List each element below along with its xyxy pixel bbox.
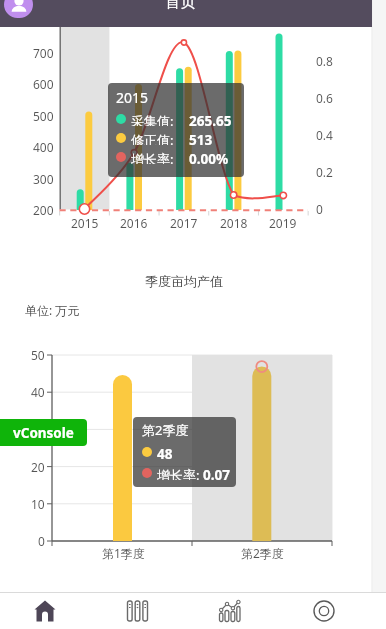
staticText: 0.4 — [316, 127, 333, 143]
staticText: 50 — [31, 347, 45, 363]
staticText: 第2季度 — [142, 421, 189, 439]
button[interactable] — [4, 0, 33, 18]
staticText: 200 — [33, 202, 54, 218]
staticText: 首页 — [165, 0, 196, 12]
staticText: 增长率: — [131, 150, 174, 164]
staticText: 0.6 — [316, 90, 333, 106]
staticText: 2016 — [120, 215, 148, 231]
button[interactable] — [0, 592, 90, 629]
staticText: 0 — [38, 533, 45, 549]
button[interactable] — [183, 592, 276, 629]
staticText: 30 — [31, 421, 45, 437]
staticText: 0.00% — [189, 150, 229, 164]
staticText: 2018 — [220, 215, 248, 231]
staticText: 0.8 — [316, 53, 333, 69]
staticText: 500 — [33, 108, 54, 124]
staticText: 265.65 — [189, 112, 232, 126]
staticText: 增长率: — [157, 466, 203, 480]
staticText: 第1季度 — [102, 545, 145, 561]
staticText: 第2季度 — [241, 545, 284, 561]
staticText: 2015 — [71, 215, 99, 231]
staticText: 48 — [157, 445, 173, 459]
button[interactable]: vConsole — [0, 419, 87, 446]
staticText: 700 — [33, 45, 54, 61]
staticText: 400 — [33, 139, 54, 155]
staticText: 10 — [31, 496, 45, 512]
staticText: 0.07 — [203, 466, 230, 480]
button[interactable] — [276, 592, 372, 629]
staticText: 513 — [189, 131, 213, 145]
staticText: 0 — [316, 201, 323, 217]
staticText: 采集值: — [131, 112, 174, 126]
staticText: 修正值: — [131, 131, 174, 145]
staticText: 40 — [31, 384, 45, 400]
staticText: 2019 — [269, 215, 297, 231]
staticText: 2015 — [116, 88, 149, 106]
staticText: vConsole — [13, 424, 74, 442]
staticText: 20 — [31, 459, 45, 475]
button[interactable] — [90, 592, 183, 629]
staticText: 0.2 — [316, 164, 333, 180]
staticText: 单位: 万元 — [25, 302, 80, 318]
staticText: 2017 — [170, 215, 198, 231]
staticText: 300 — [33, 171, 54, 187]
staticText: 600 — [33, 76, 54, 92]
staticText: 季度亩均产值 — [145, 273, 223, 289]
